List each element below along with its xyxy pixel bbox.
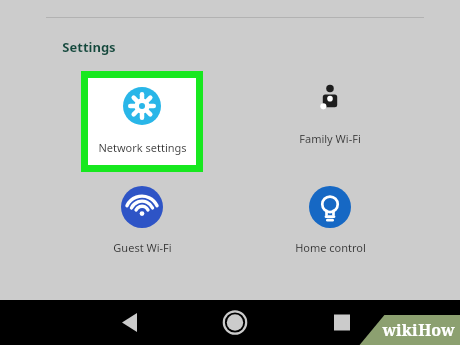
button[interactable]: Family Wi-Fi: [270, 80, 390, 146]
button[interactable]: Home: [218, 300, 254, 345]
button[interactable]: Guest Wi-Fi: [82, 186, 202, 255]
button[interactable]: Network settings: [81, 71, 203, 172]
staticText: Network settings: [98, 140, 187, 155]
staticText: wiki: [382, 319, 418, 341]
button[interactable]: Home control: [270, 186, 390, 255]
staticText: How: [418, 319, 455, 341]
button[interactable]: Back: [113, 300, 149, 345]
staticText: Guest Wi-Fi: [113, 240, 172, 255]
staticText: Family Wi-Fi: [299, 131, 361, 146]
staticText: Settings: [62, 38, 116, 56]
button[interactable]: Recent apps: [325, 300, 361, 345]
staticText: Home control: [295, 240, 366, 255]
